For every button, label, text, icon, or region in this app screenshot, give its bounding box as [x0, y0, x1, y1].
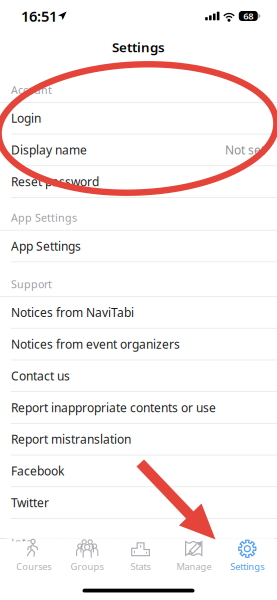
staticText: Settings — [230, 560, 264, 573]
staticText: Support — [11, 277, 52, 291]
staticText: Courses — [16, 560, 51, 573]
staticText: Contact us — [11, 368, 70, 384]
staticText: Report mistranslation — [11, 431, 131, 447]
button[interactable]: App Settings — [0, 230, 277, 262]
staticText: Info — [11, 535, 32, 549]
staticText: Not set — [225, 142, 265, 158]
button[interactable]: Stats — [114, 539, 167, 577]
staticText: App Settings — [11, 238, 81, 254]
button[interactable]: Display name — [0, 134, 277, 166]
staticText: 68 — [243, 10, 253, 22]
button[interactable]: Facebook — [0, 455, 277, 487]
button[interactable]: Notices from NaviTabi — [0, 297, 277, 329]
button[interactable]: Login — [0, 103, 277, 134]
button[interactable]: Courses — [7, 539, 60, 577]
staticText: Notices from NaviTabi — [11, 304, 134, 320]
button[interactable]: Report mistranslation — [0, 424, 277, 455]
button[interactable]: Twitter — [0, 487, 277, 519]
button[interactable]: Manage — [167, 539, 221, 577]
button[interactable]: Notices from event organizers — [0, 329, 277, 360]
staticText: Login — [11, 110, 41, 126]
button[interactable]: Settings — [221, 539, 274, 577]
staticText: Account — [11, 83, 52, 97]
staticText: Report inappropriate contents or use — [11, 399, 216, 415]
button[interactable]: Reset password — [0, 166, 277, 198]
staticText: Manage — [176, 560, 211, 573]
staticText: App Settings — [11, 211, 77, 225]
staticText: Reset password — [11, 174, 99, 189]
staticText: Groups — [71, 560, 104, 573]
button[interactable]: Report inappropriate contents or use — [0, 392, 277, 424]
staticText: Notices from event organizers — [11, 336, 180, 352]
staticText: 16:51 — [21, 6, 57, 26]
staticText: Settings — [112, 38, 165, 56]
staticText: Facebook — [11, 463, 64, 479]
staticText: Twitter — [11, 495, 49, 510]
button[interactable]: Contact us — [0, 360, 277, 392]
staticText: Stats — [130, 560, 150, 573]
staticText: Display name — [11, 142, 87, 158]
button[interactable]: Groups — [60, 539, 114, 577]
